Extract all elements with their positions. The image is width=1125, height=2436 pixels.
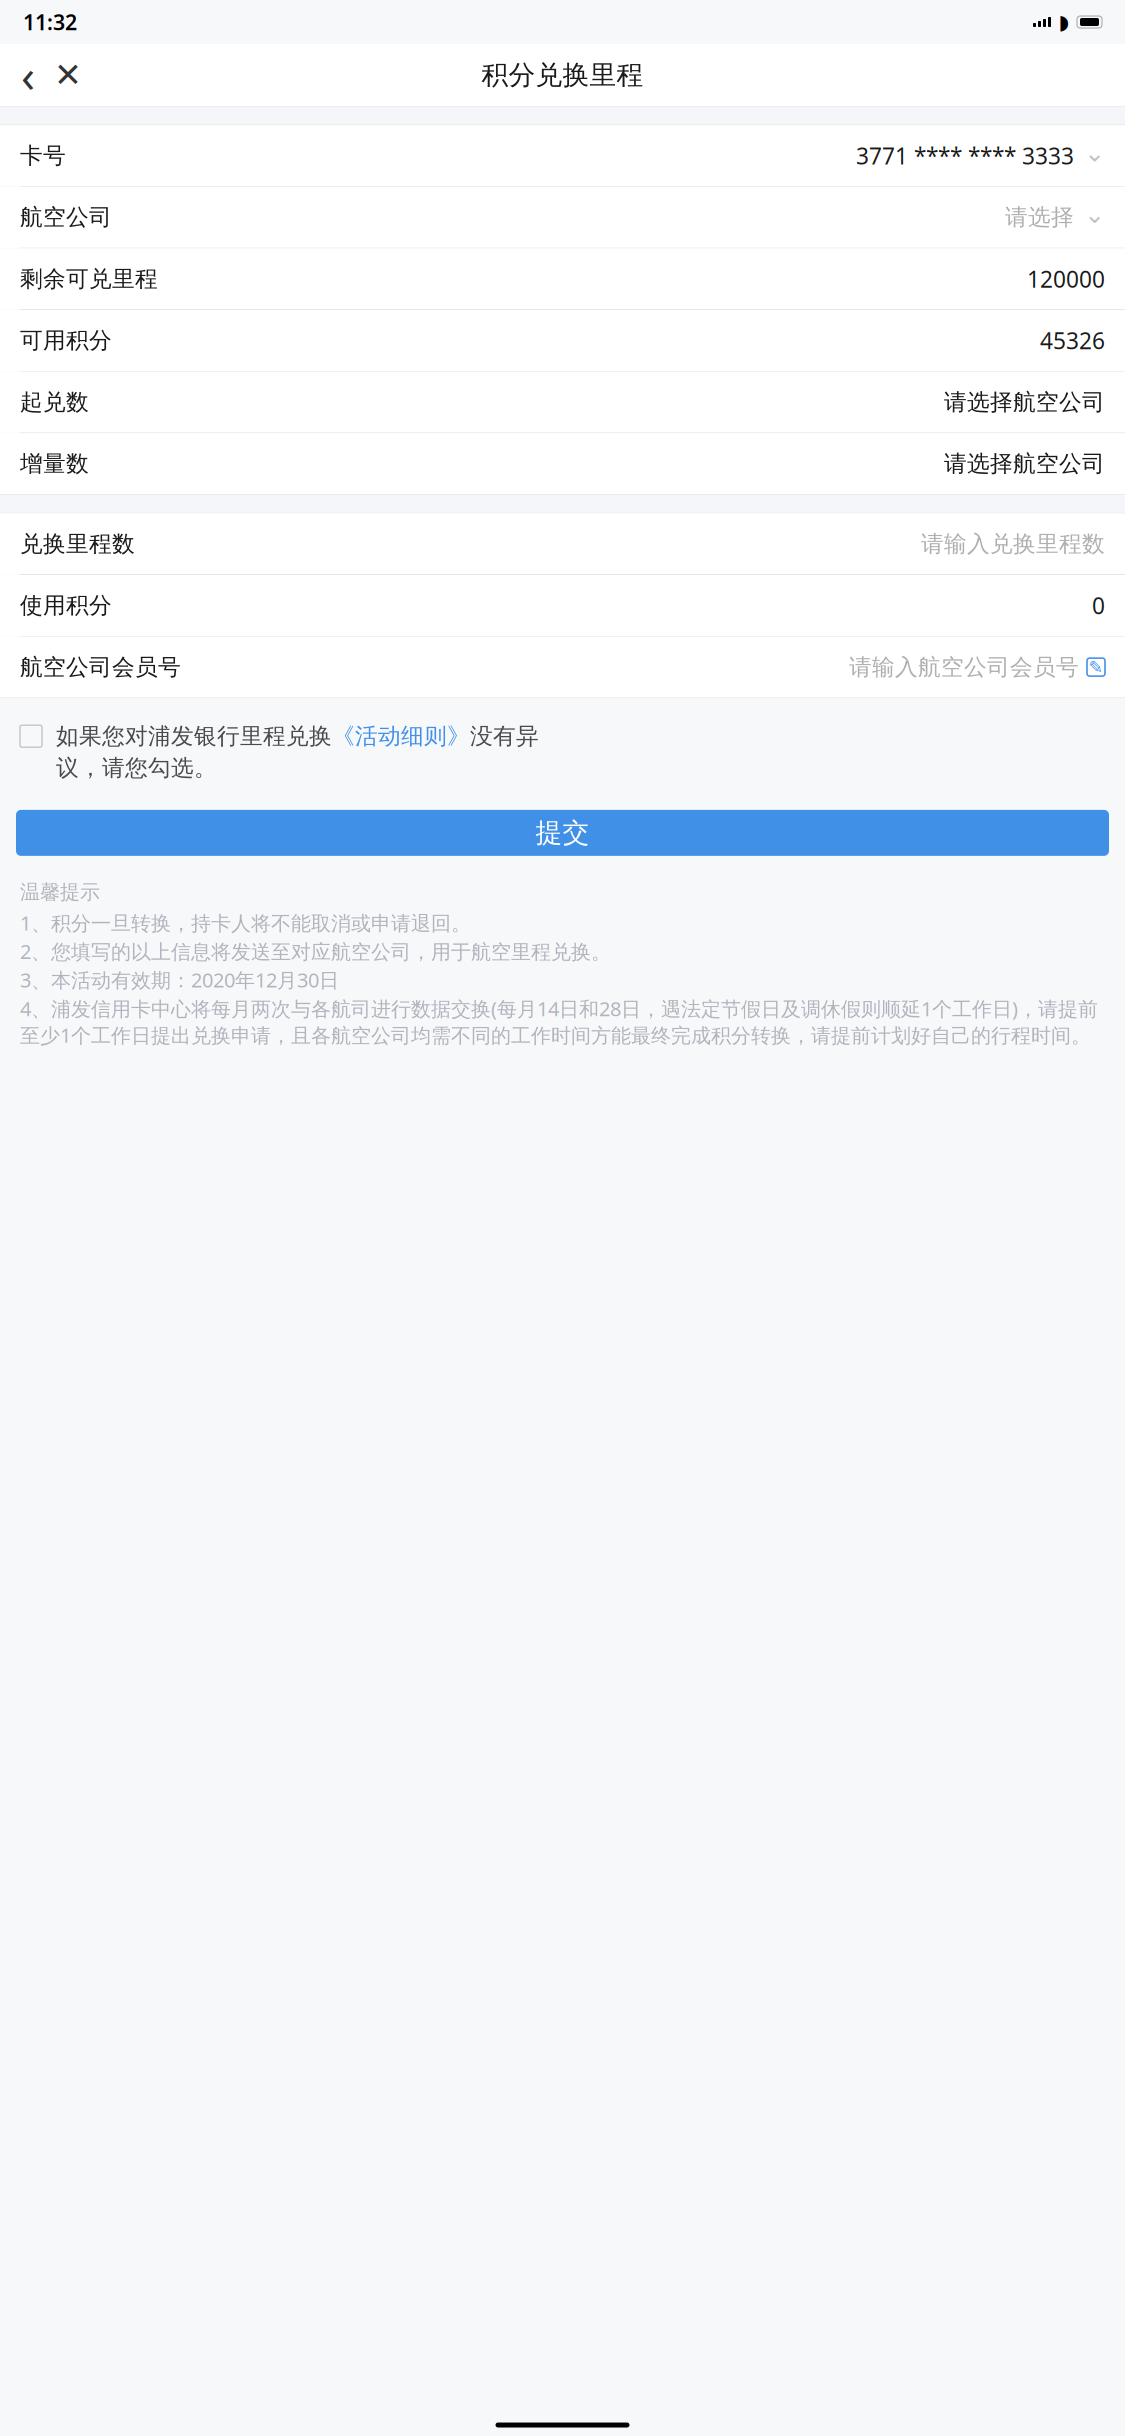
- staticText: 《活动细则》: [332, 722, 470, 750]
- staticText: 增量数: [20, 450, 89, 478]
- button[interactable]: 航空公司: [0, 187, 1125, 248]
- staticText: 起兑数: [20, 388, 89, 416]
- button[interactable]: Close: [48, 53, 88, 97]
- staticText: 航空公司: [20, 203, 112, 231]
- staticText: ⌄: [1084, 200, 1105, 229]
- staticText: 3、本活动有效期：2020年12月30日: [20, 967, 339, 993]
- button[interactable]: 提交: [16, 810, 1109, 856]
- staticText: 积分兑换里程: [481, 59, 643, 91]
- staticText: ✎: [1088, 657, 1103, 677]
- staticText: ⌄: [1084, 138, 1105, 167]
- staticText: 可用积分: [20, 327, 112, 354]
- button[interactable]: 兑换里程数: [0, 513, 1125, 574]
- staticText: 45326: [1040, 325, 1105, 355]
- staticText: 3771 **** **** 3333: [856, 141, 1074, 171]
- staticText: 11:32: [23, 8, 77, 36]
- button[interactable]: 如果您对浦发银行里程兑换: [0, 698, 1125, 788]
- staticText: 请选择航空公司: [944, 388, 1105, 416]
- staticText: 没有异: [470, 722, 539, 750]
- staticText: 120000: [1027, 264, 1105, 294]
- staticText: 4、浦发信用卡中心将每月两次与各航司进行数据交换(每月14日和28日，遇法定节假…: [20, 995, 1098, 1048]
- staticText: 请选择航空公司: [944, 450, 1105, 478]
- staticText: 请选择: [1005, 203, 1074, 231]
- staticText: 议，请您勾选。: [56, 754, 217, 782]
- staticText: 航空公司会员号: [20, 653, 181, 681]
- staticText: 提交: [535, 816, 589, 849]
- staticText: 0: [1092, 590, 1105, 620]
- button[interactable]: 卡号: [0, 125, 1125, 186]
- staticText: ✕: [54, 56, 82, 94]
- staticText: 温馨提示: [20, 880, 100, 904]
- staticText: 剩余可兑里程: [20, 265, 158, 293]
- staticText: 使用积分: [20, 592, 112, 619]
- staticText: 卡号: [20, 142, 66, 170]
- staticText: 如果您对浦发银行里程兑换: [56, 722, 332, 750]
- staticText: 兑换里程数: [20, 530, 135, 558]
- button[interactable]: 航空公司会员号: [0, 637, 1125, 698]
- staticText: 请输入航空公司会员号: [849, 653, 1079, 681]
- staticText: 请输入兑换里程数: [921, 530, 1105, 558]
- staticText: 2、您填写的以上信息将发送至对应航空公司，用于航空里程兑换。: [20, 938, 611, 965]
- staticText: ◗: [1058, 11, 1069, 33]
- staticText: ‹: [21, 45, 35, 105]
- staticText: 1、积分一旦转换，持卡人将不能取消或申请退回。: [20, 909, 471, 936]
- button[interactable]: Back: [8, 53, 48, 97]
